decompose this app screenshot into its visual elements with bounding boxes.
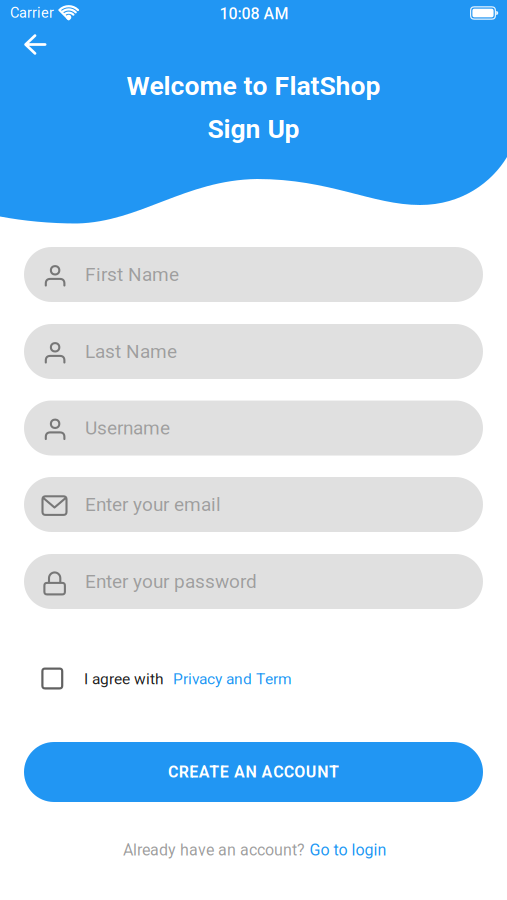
button[interactable]: First Name [24,247,483,302]
button[interactable] [41,667,63,689]
staticText: I agree with [84,670,164,688]
staticText: Welcome to FlatShop [126,70,380,102]
button[interactable]: Go to login [309,841,386,859]
staticText: 10:08 AM [219,4,288,23]
staticText: Sign Up [207,113,299,145]
button[interactable]: CREATE AN ACCOUNT [24,742,483,802]
staticText: Username [85,417,170,439]
staticText: Last Name [85,340,177,363]
button[interactable]: Enter your email [24,477,483,532]
button[interactable] [13,24,57,64]
button[interactable]: Privacy and Term [173,670,292,688]
staticText: Enter your email [85,493,221,516]
staticText: Carrier [10,4,54,21]
staticText: Enter your password [85,570,257,593]
button[interactable]: Username [24,400,483,455]
staticText: First Name [85,263,179,286]
staticText: CREATE AN ACCOUNT [168,763,339,781]
staticText: Already have an account? [123,841,305,859]
staticText: Privacy and Term [173,670,292,688]
staticText: Go to login [309,841,386,859]
button[interactable]: Enter your password [24,554,483,609]
button[interactable]: Last Name [24,324,483,379]
